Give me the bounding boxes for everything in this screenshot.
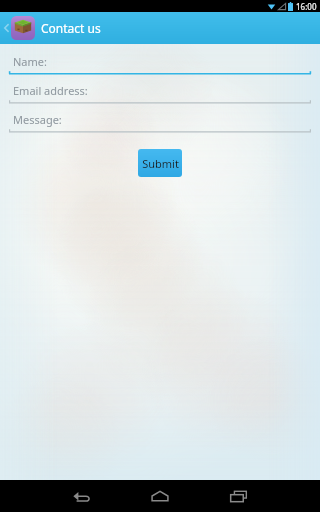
button[interactable]: Recents [215,480,261,512]
staticText: Email address: [13,83,88,98]
staticText: Contact us [41,20,101,36]
button[interactable]: Submit [138,149,182,177]
button[interactable]: Message: [9,110,311,133]
button[interactable]: Contact us [0,12,320,44]
staticText: Submit [142,156,179,171]
button[interactable]: Email address: [9,81,311,104]
button[interactable]: Back [59,480,105,512]
staticText: Message: [13,112,62,127]
button[interactable]: Name: [9,52,311,75]
staticText: 16:00 [296,1,317,12]
staticText: Name: [13,54,47,69]
button[interactable]: Home [137,480,183,512]
